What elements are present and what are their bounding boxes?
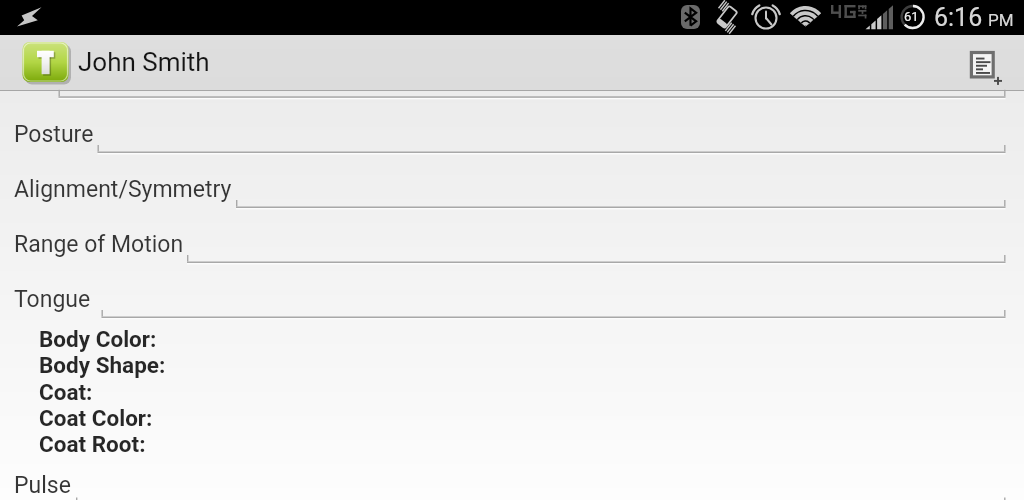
- staticText: Alignment/Symmetry: [14, 176, 232, 203]
- staticText: Range of Motion: [14, 231, 184, 258]
- staticText: 61: [904, 9, 919, 24]
- staticText: Body Shape:: [39, 352, 166, 378]
- staticText: Tongue: [14, 286, 91, 313]
- staticText: Coat Root:: [39, 431, 146, 457]
- staticText: Posture: [14, 121, 94, 148]
- staticText: 6:16: [934, 3, 983, 32]
- staticText: PM: [988, 10, 1014, 30]
- staticText: Body Color:: [39, 326, 157, 352]
- staticText: Pulse: [14, 472, 71, 499]
- staticText: John Smith: [78, 47, 210, 77]
- staticText: Coat Color:: [39, 405, 153, 431]
- staticText: Coat:: [39, 379, 93, 405]
- button[interactable]: New note: [962, 35, 1018, 91]
